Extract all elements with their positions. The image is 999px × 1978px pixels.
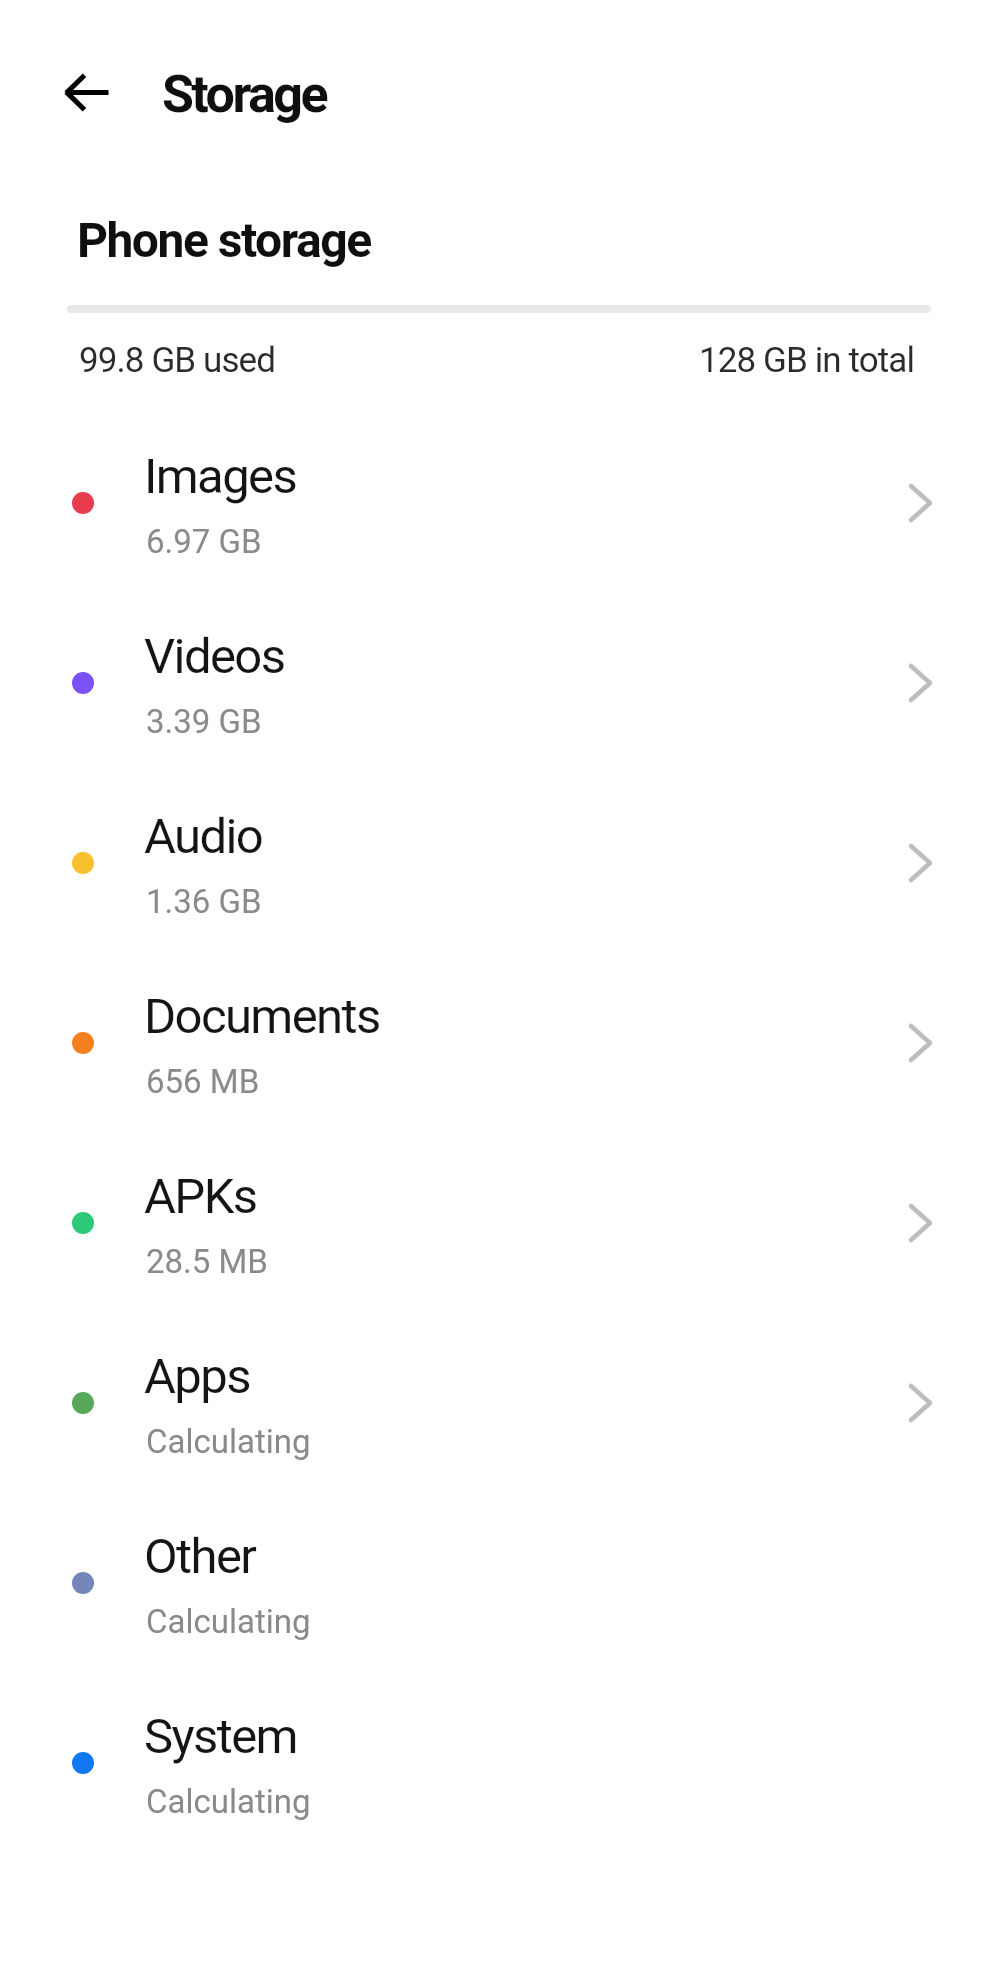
staticText: Audio	[144, 808, 263, 865]
staticText: Storage	[162, 64, 326, 125]
staticText: Documents	[144, 988, 380, 1045]
staticText: 128 GB in total	[699, 340, 915, 381]
staticText: Calculating	[146, 1422, 311, 1461]
button[interactable]: Documents	[0, 959, 999, 1139]
staticText: Calculating	[146, 1602, 311, 1641]
button[interactable]	[45, 61, 129, 123]
staticText: Calculating	[146, 1782, 311, 1821]
button[interactable]: Other	[0, 1499, 999, 1679]
button[interactable]: APKs	[0, 1139, 999, 1319]
staticText: 99.8 GB used	[79, 340, 276, 381]
button[interactable]: Images	[0, 419, 999, 599]
staticText: System	[144, 1708, 297, 1765]
staticText: APKs	[144, 1168, 257, 1225]
staticText: Apps	[144, 1348, 250, 1405]
staticText: Videos	[144, 628, 285, 685]
staticText: Other	[144, 1528, 256, 1585]
staticText: 1.36 GB	[146, 882, 262, 921]
staticText: 6.97 GB	[146, 522, 262, 561]
button[interactable]: System	[0, 1679, 999, 1859]
button[interactable]: Videos	[0, 599, 999, 779]
staticText: 3.39 GB	[146, 702, 262, 741]
button[interactable]: Audio	[0, 779, 999, 959]
staticText: 656 MB	[146, 1062, 260, 1101]
staticText: Images	[144, 448, 297, 505]
staticText: Phone storage	[77, 212, 371, 268]
button[interactable]: Apps	[0, 1319, 999, 1499]
staticText: 28.5 MB	[146, 1242, 268, 1281]
